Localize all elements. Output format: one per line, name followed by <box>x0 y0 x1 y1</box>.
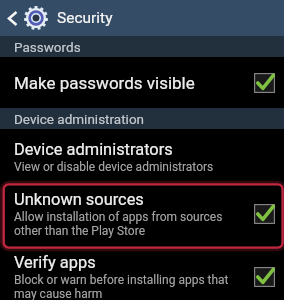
staticText: Security <box>57 9 113 27</box>
staticText: Device administrators <box>14 140 173 159</box>
staticText: Allow installation of apps from sources … <box>14 210 246 238</box>
staticText: Passwords <box>14 39 81 55</box>
staticText: Unknown sources <box>14 190 144 209</box>
button[interactable]: Device administrators <box>0 129 284 184</box>
staticText: Verify apps <box>14 253 96 272</box>
staticText: Block or warn before installing apps tha… <box>14 273 246 300</box>
staticText: View or disable device administrators <box>14 160 214 174</box>
button[interactable]: Unknown sources <box>0 184 284 247</box>
button[interactable]: Navigate up <box>0 0 24 36</box>
button[interactable]: Verify apps <box>0 247 284 300</box>
staticText: Device administration <box>14 111 145 127</box>
staticText: Make passwords visible <box>14 73 195 93</box>
button[interactable]: Make passwords visible <box>0 57 284 108</box>
